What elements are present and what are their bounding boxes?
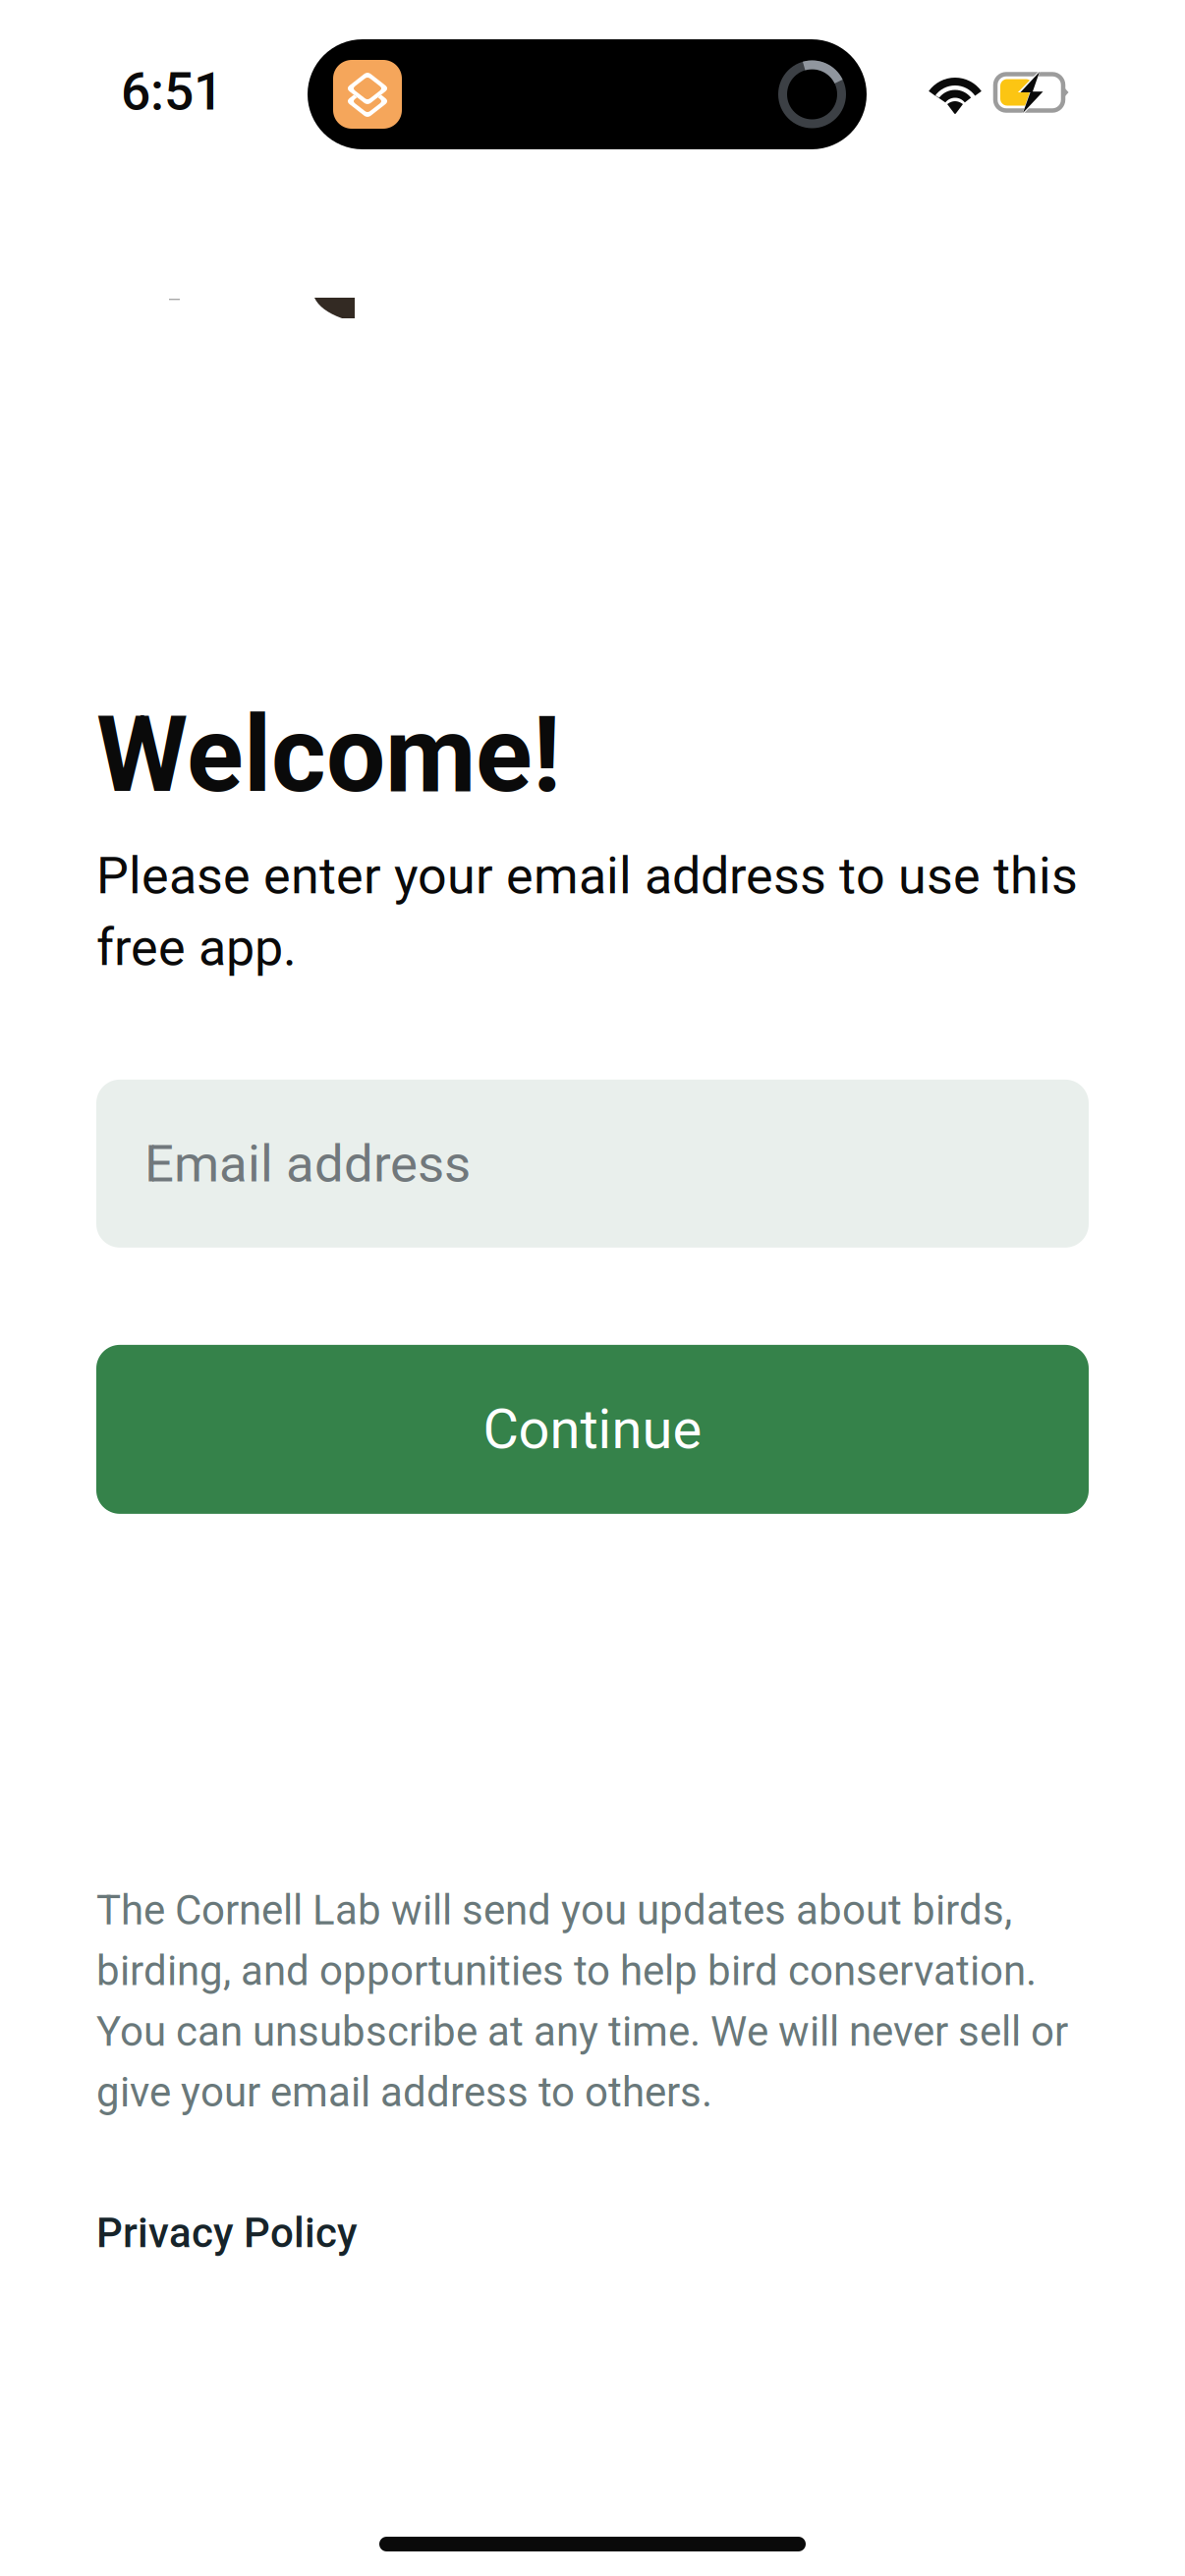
staticText: Welcome!	[96, 694, 561, 816]
staticText: The Cornell Lab will send you updates ab…	[96, 1886, 1068, 2117]
staticText: Continue	[483, 1397, 702, 1462]
button[interactable]: Privacy Policy	[96, 2209, 358, 2257]
staticText: 6:51	[121, 61, 223, 122]
staticText: Email address	[144, 1133, 471, 1194]
button[interactable]: Email address	[96, 1080, 1089, 1248]
staticText: Please enter your email address to use t…	[96, 846, 1078, 977]
button[interactable]: Continue	[96, 1345, 1089, 1514]
staticText: Privacy Policy	[96, 2209, 358, 2257]
